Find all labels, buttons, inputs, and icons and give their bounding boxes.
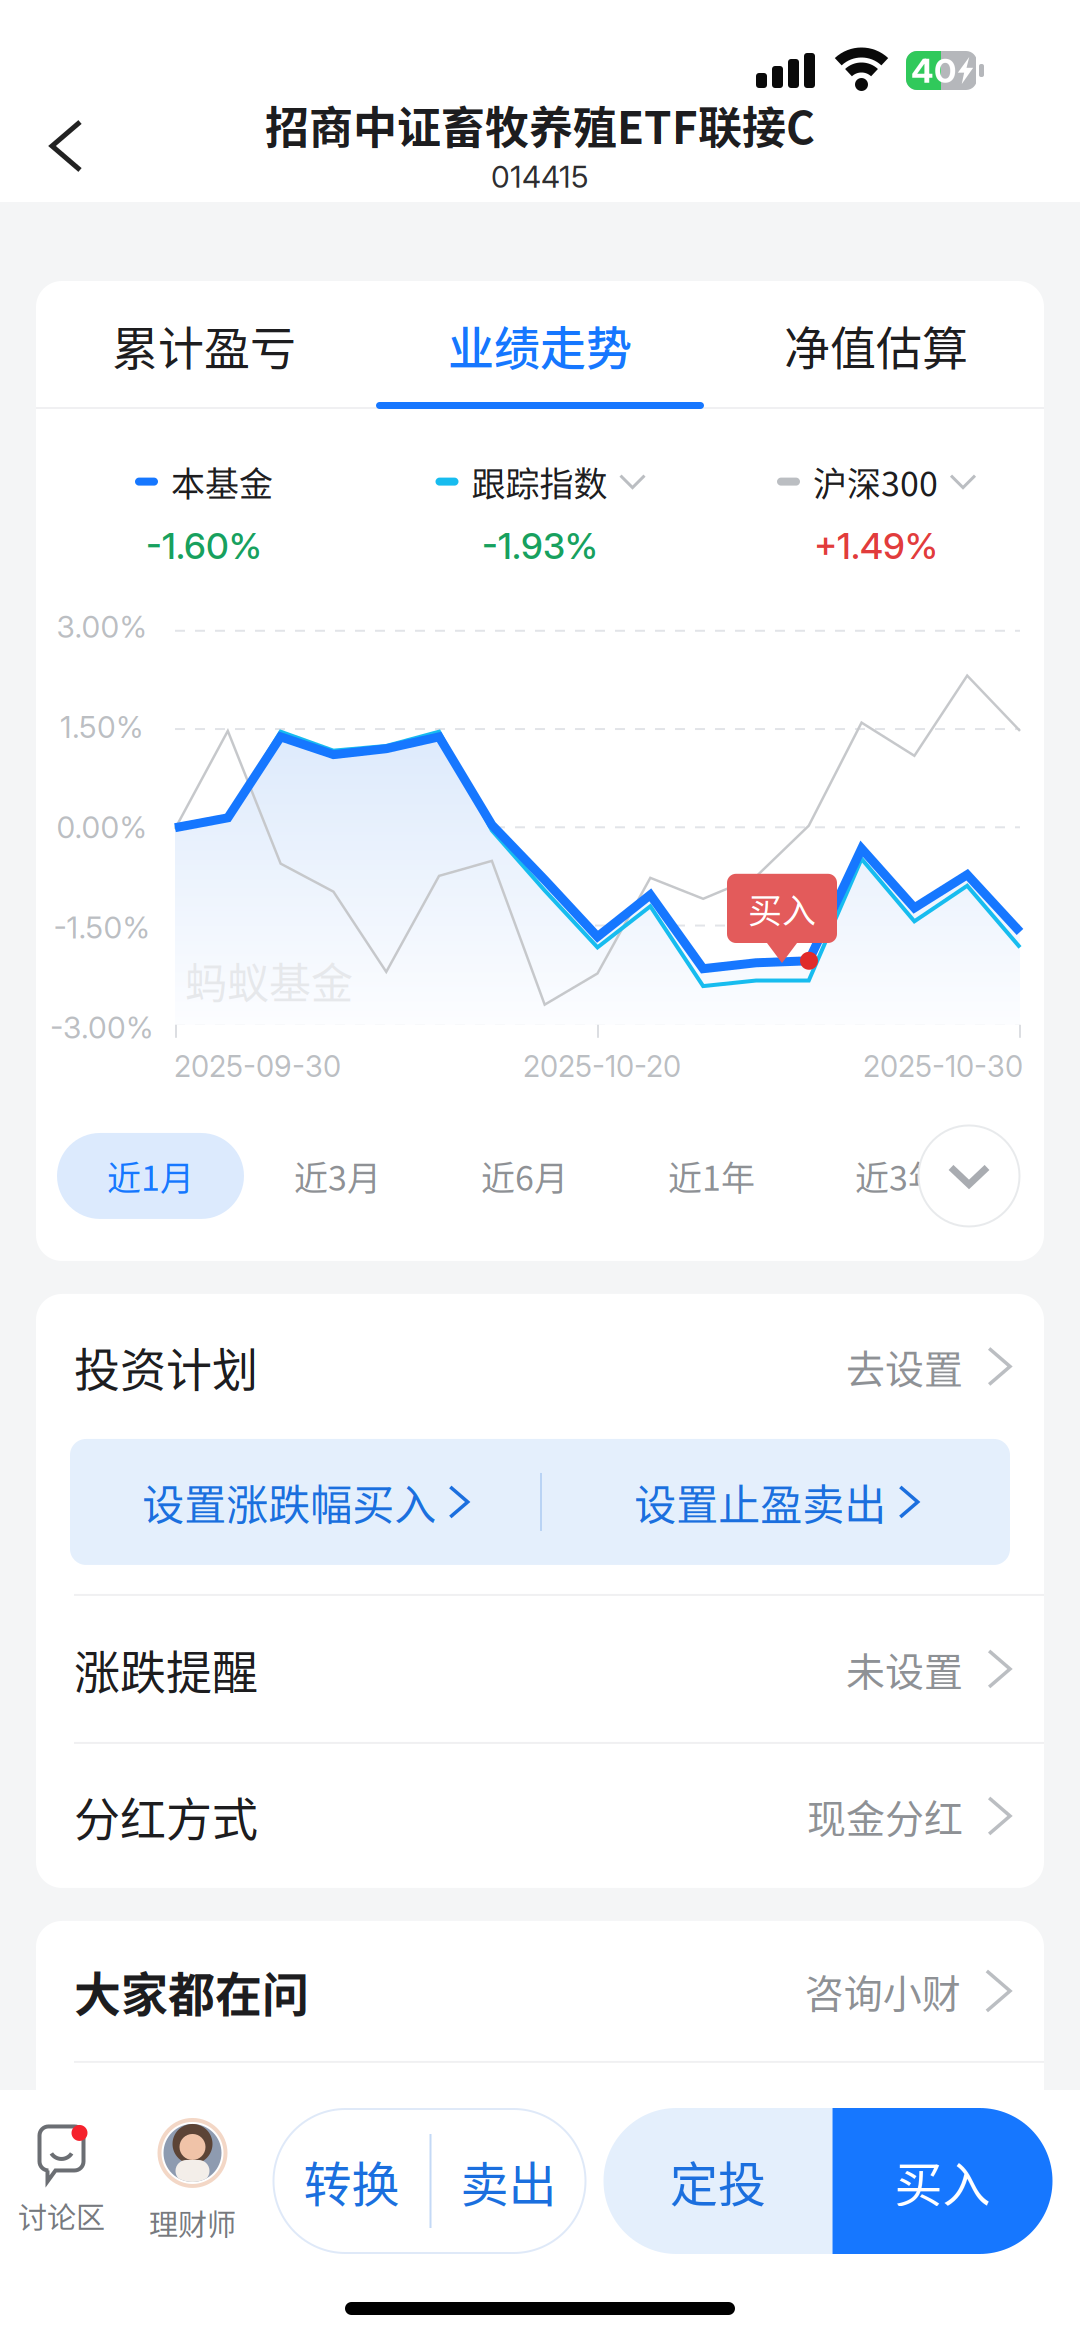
button[interactable]: 转换 [273, 2109, 429, 2253]
staticText: 014415 [491, 159, 589, 195]
staticText: 涨跌提醒 [74, 1636, 258, 1702]
staticText: 近3年 [855, 1151, 942, 1200]
staticText: -1.60% [146, 524, 262, 568]
button[interactable]: 近3年 [805, 1133, 992, 1219]
staticText: 累计盈亏 [112, 312, 296, 378]
button[interactable]: 大家都在问 [36, 1921, 1044, 2061]
staticText: 招商中证畜牧养殖ETF联接C [265, 93, 815, 157]
staticText: 3.00% [56, 609, 146, 645]
button[interactable]: 近1月 [57, 1133, 244, 1219]
staticText: 现金分红 [807, 1788, 963, 1844]
button[interactable]: 返回 [0, 94, 114, 198]
staticText: 近1月 [107, 1151, 194, 1200]
button[interactable]: 累计盈亏 [36, 281, 372, 409]
button[interactable]: 近6月 [431, 1133, 618, 1219]
button[interactable]: 近3月 [244, 1133, 431, 1219]
staticText: 卖出 [460, 2146, 556, 2216]
staticText: 近1年 [668, 1151, 755, 1200]
button[interactable]: 近1年 [618, 1133, 805, 1219]
staticText: 2025-10-20 [523, 1049, 681, 1084]
staticText: 沪深300 [813, 457, 938, 506]
button[interactable]: 卖出 [431, 2109, 585, 2253]
staticText: 40 [911, 50, 956, 91]
staticText: 设置止盈卖出 [634, 1472, 886, 1532]
staticText: 转换 [303, 2146, 399, 2216]
staticText: +1.49% [814, 524, 938, 568]
staticText: 净值估算 [784, 312, 968, 378]
button[interactable]: 展开更多周期 [914, 1121, 1024, 1231]
staticText: 大家都在问 [74, 1957, 309, 2025]
staticText: 蚂蚁基金 [185, 950, 353, 1011]
staticText: 跟踪指数 [471, 457, 607, 506]
staticText: 讨论区 [18, 2195, 105, 2237]
staticText: 定投 [670, 2146, 766, 2216]
button[interactable]: 理财师 [126, 2096, 258, 2266]
button[interactable]: 讨论区 [0, 2096, 126, 2266]
staticText: 理财师 [149, 2202, 236, 2244]
button[interactable]: 净值估算 [708, 281, 1044, 409]
staticText: 分红方式 [74, 1783, 258, 1849]
button[interactable]: 设置止盈卖出 [542, 1439, 1010, 1565]
staticText: 买入 [894, 2146, 990, 2216]
button[interactable]: 分红方式 [36, 1744, 1044, 1888]
staticText: -3.00% [50, 1009, 153, 1046]
staticText: 投资计划 [74, 1333, 258, 1400]
button[interactable]: 买入 [832, 2108, 1052, 2254]
staticText: 买入 [748, 884, 816, 933]
staticText: 业绩走势 [448, 312, 632, 378]
button[interactable]: 涨跌提醒 [36, 1596, 1044, 1742]
button[interactable]: 定投 [603, 2108, 832, 2254]
staticText: 2025-09-30 [174, 1049, 341, 1084]
staticText: 0.00% [56, 809, 146, 845]
staticText: 1.50% [60, 709, 143, 745]
staticText: 去设置 [846, 1338, 963, 1395]
button[interactable]: 业绩走势 [372, 281, 708, 409]
button[interactable]: 投资计划 [36, 1294, 1044, 1439]
staticText: 近3月 [294, 1151, 381, 1200]
staticText: -1.50% [53, 909, 149, 946]
staticText: 未设置 [846, 1641, 963, 1697]
staticText: 设置涨跌幅买入 [142, 1472, 436, 1532]
staticText: -1.93% [482, 524, 598, 568]
staticText: 咨询小财 [805, 1963, 961, 2019]
button[interactable]: 设置涨跌幅买入 [70, 1439, 540, 1565]
staticText: 近6月 [481, 1151, 568, 1200]
staticText: 2025-10-30 [863, 1049, 1023, 1084]
staticText: 本基金 [171, 457, 273, 506]
